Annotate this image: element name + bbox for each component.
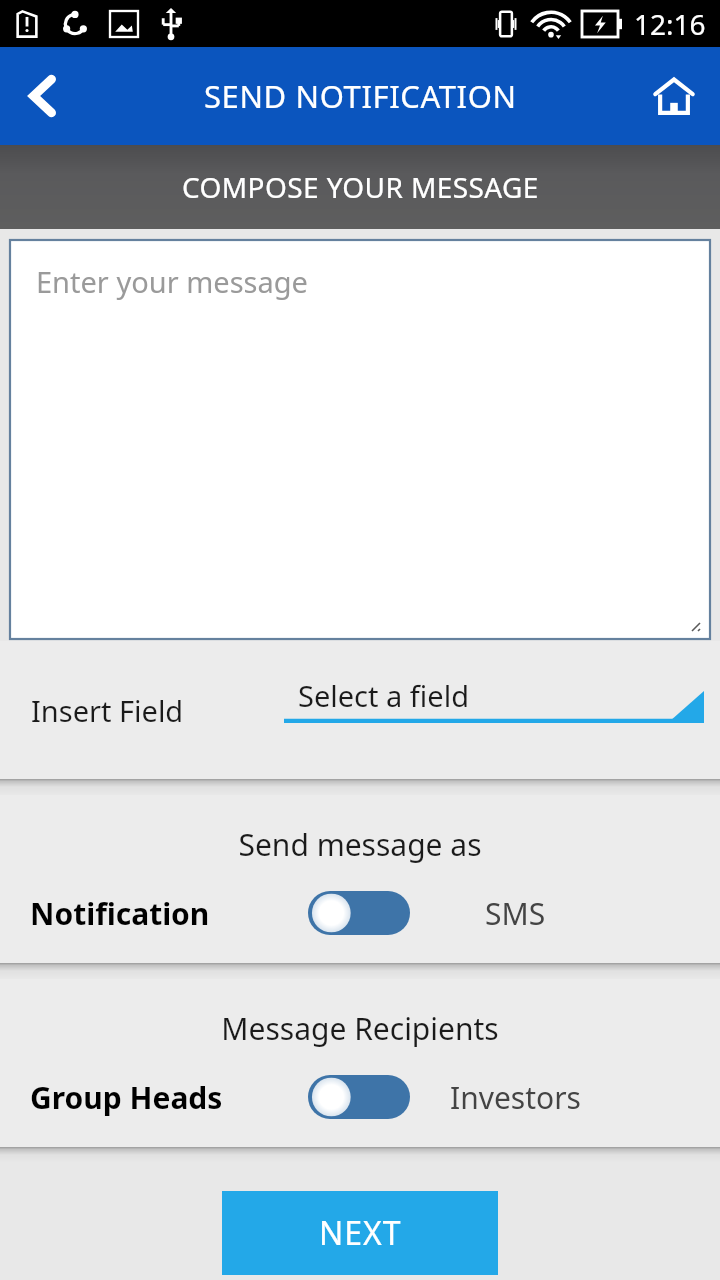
staticText: Notification [30, 893, 210, 934]
button[interactable]: Home [628, 47, 720, 145]
staticText: SEND NOTIFICATION [204, 75, 517, 117]
button[interactable]: Select a field [284, 671, 704, 749]
staticText: SMS [485, 893, 546, 934]
button[interactable]: Back [0, 47, 84, 145]
staticText: Send message as [0, 824, 720, 865]
staticText: Investors [450, 1077, 581, 1118]
staticText: Insert Field [31, 691, 184, 730]
button[interactable]: NEXT [222, 1191, 498, 1275]
staticText: Message Recipients [0, 1008, 720, 1049]
staticText: Enter your message [36, 262, 308, 301]
staticText: Group Heads [30, 1077, 223, 1118]
staticText: 12:16 [634, 5, 706, 43]
staticText: NEXT [319, 1211, 402, 1255]
staticText: Select a field [298, 676, 469, 715]
button[interactable]: Toggle [308, 891, 410, 935]
button[interactable]: Toggle [308, 1075, 410, 1119]
button[interactable]: Enter your message [10, 240, 710, 639]
staticText: COMPOSE YOUR MESSAGE [182, 168, 539, 206]
